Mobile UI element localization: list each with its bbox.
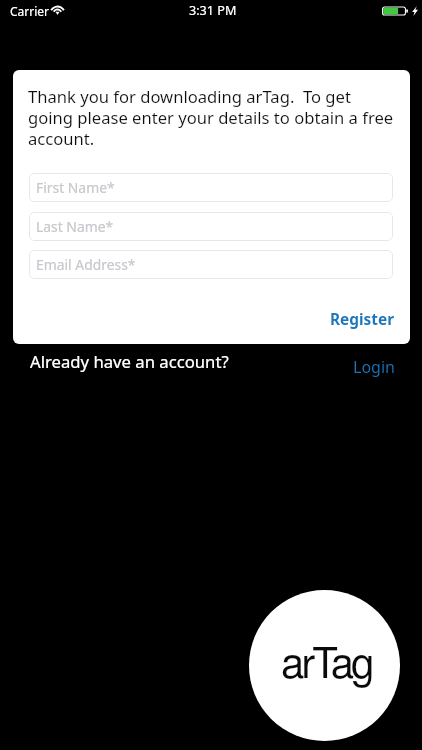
staticText: Last Name*: [36, 217, 114, 236]
button[interactable]: Register: [314, 303, 395, 335]
button[interactable]: First Name*: [29, 173, 393, 202]
button[interactable]: Last Name*: [29, 212, 393, 241]
staticText: Email Address*: [36, 255, 136, 274]
staticText: First Name*: [36, 178, 115, 197]
staticText: Carrier: [10, 3, 50, 19]
staticText: Register: [330, 309, 395, 330]
staticText: arTag: [281, 630, 372, 690]
button[interactable]: Email Address*: [29, 250, 393, 279]
staticText: Thank you for downloading arTag. To get …: [28, 85, 396, 150]
staticText: Login: [353, 356, 395, 378]
other: Battery charging: [382, 5, 418, 17]
staticText: 3:31 PM: [189, 2, 237, 19]
button[interactable]: arTag logo: [249, 590, 400, 741]
staticText: Already have an account?: [30, 350, 229, 373]
other: Wi-Fi: [50, 4, 65, 15]
button[interactable]: Login: [345, 356, 395, 378]
